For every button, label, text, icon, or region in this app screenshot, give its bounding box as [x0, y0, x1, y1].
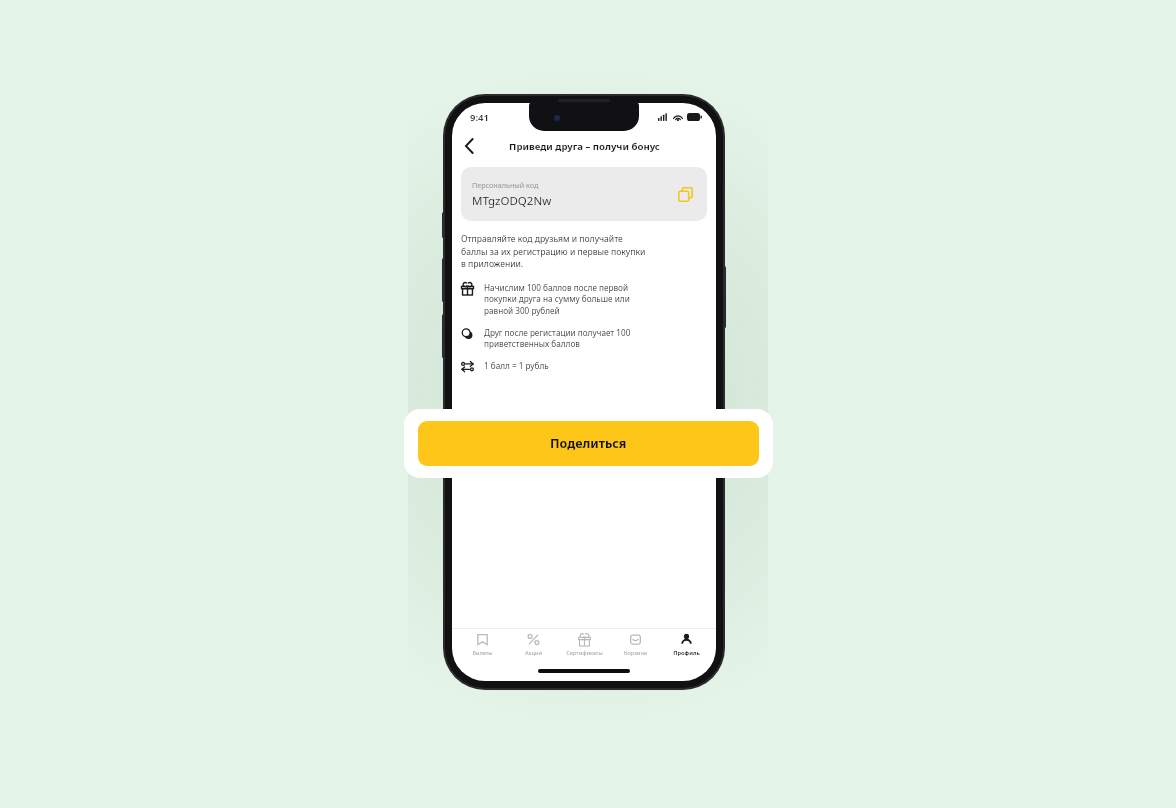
- button[interactable]: Поделиться: [418, 421, 759, 466]
- staticText: Начислим 100 баллов после первой покупки…: [484, 282, 630, 317]
- staticText: Отправляйте код друзьям и получайте балл…: [461, 233, 646, 269]
- staticText: Приведи друга – получи бонус: [509, 140, 660, 153]
- staticText: Персональный код: [472, 180, 539, 190]
- button[interactable]: Билеты: [456, 629, 508, 665]
- staticText: Профиль: [673, 649, 700, 657]
- staticText: Билеты: [472, 649, 493, 657]
- staticText: Сертификаты: [566, 649, 603, 657]
- staticText: Акции: [525, 649, 542, 657]
- staticText: 9:41: [470, 111, 489, 124]
- button[interactable]: Сертификаты: [559, 629, 610, 665]
- staticText: MTgzODQ2Nw: [472, 193, 552, 209]
- button[interactable]: Акции: [508, 629, 559, 665]
- button[interactable]: Back: [458, 135, 480, 157]
- staticText: Друг после регистации получает 100 приве…: [484, 327, 631, 350]
- staticText: 1 балл = 1 рубль: [484, 360, 549, 371]
- staticText: Поделиться: [550, 435, 627, 452]
- button[interactable]: Профиль: [661, 629, 712, 665]
- staticText: Корзина: [624, 649, 647, 657]
- button[interactable]: Корзина: [610, 629, 661, 665]
- button[interactable]: Copy code: [674, 183, 696, 205]
- button[interactable]: Персональный код: [461, 167, 707, 221]
